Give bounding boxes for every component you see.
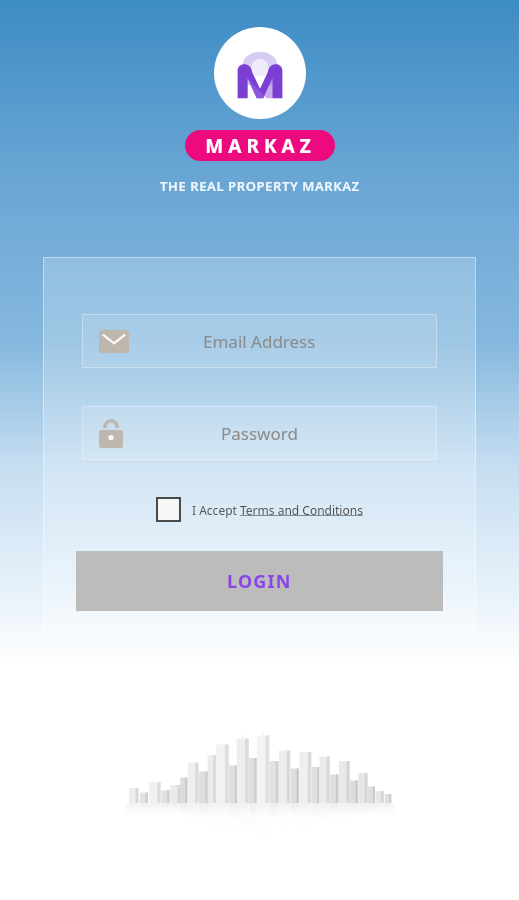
other: Markaz logo — [214, 27, 306, 119]
button[interactable]: I Accept — [152, 494, 367, 525]
staticText: THE REAL PROPERTY MARKAZ — [160, 177, 360, 195]
staticText: Password — [221, 422, 298, 445]
staticText: Email Address — [203, 330, 316, 353]
staticText: Terms and Conditions — [240, 502, 363, 518]
staticText: MARKAZ — [205, 133, 316, 159]
button[interactable]: Email Address — [82, 314, 437, 368]
button[interactable]: LOGIN — [76, 551, 443, 611]
staticText: I Accept — [192, 502, 240, 518]
staticText: LOGIN — [227, 569, 292, 594]
button[interactable]: Password — [82, 406, 437, 460]
